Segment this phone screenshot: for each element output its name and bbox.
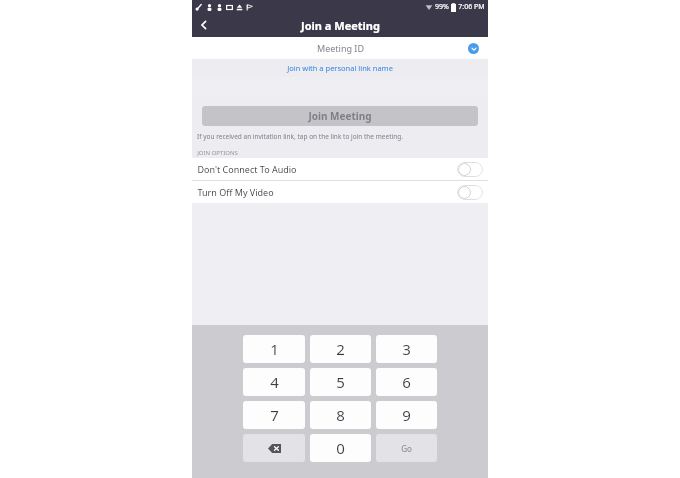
button[interactable]: 8: [310, 401, 371, 429]
staticText: Join with a personal link name: [287, 63, 393, 73]
button[interactable]: Back: [192, 13, 216, 37]
button[interactable]: 9: [376, 401, 437, 429]
button[interactable]: Toggle: [457, 185, 483, 200]
button[interactable]: 1: [243, 335, 305, 363]
staticText: 8: [336, 405, 345, 425]
staticText: Join a Meeting: [301, 18, 380, 33]
staticText: Don't Connect To Audio: [197, 163, 297, 175]
button[interactable]: Go: [376, 434, 437, 462]
staticText: Meeting ID: [317, 42, 364, 54]
button[interactable]: Toggle: [457, 162, 483, 177]
button[interactable]: Join with a personal link name: [192, 59, 488, 77]
staticText: 9: [402, 405, 411, 425]
button[interactable]: Join Meeting: [202, 106, 478, 126]
button[interactable]: Meeting ID: [192, 37, 488, 59]
staticText: 99%: [435, 2, 449, 12]
button[interactable]: Backspace: [243, 434, 305, 462]
staticText: 7:06 PM: [458, 2, 485, 12]
button[interactable]: 2: [310, 335, 371, 363]
staticText: 3: [402, 339, 411, 359]
button[interactable]: 0: [310, 434, 371, 462]
staticText: Turn Off My Video: [197, 186, 274, 198]
staticText: 4: [270, 372, 279, 392]
button[interactable]: Don't Connect To Audio: [192, 158, 488, 180]
button[interactable]: 7: [243, 401, 305, 429]
staticText: JOIN OPTIONS: [197, 149, 238, 157]
staticText: 5: [336, 372, 345, 392]
button[interactable]: 5: [310, 368, 371, 396]
staticText: 0: [336, 438, 345, 458]
staticText: Join Meeting: [308, 109, 372, 123]
button[interactable]: 3: [376, 335, 437, 363]
button[interactable]: Show meeting ID history: [468, 43, 479, 54]
staticText: If you received an invitation link, tap …: [197, 132, 403, 141]
staticText: Go: [401, 443, 412, 454]
button[interactable]: 4: [243, 368, 305, 396]
button[interactable]: Turn Off My Video: [192, 181, 488, 203]
staticText: 2: [336, 339, 345, 359]
staticText: 1: [270, 339, 279, 359]
staticText: 7: [270, 405, 279, 425]
staticText: 6: [402, 372, 411, 392]
button[interactable]: 6: [376, 368, 437, 396]
